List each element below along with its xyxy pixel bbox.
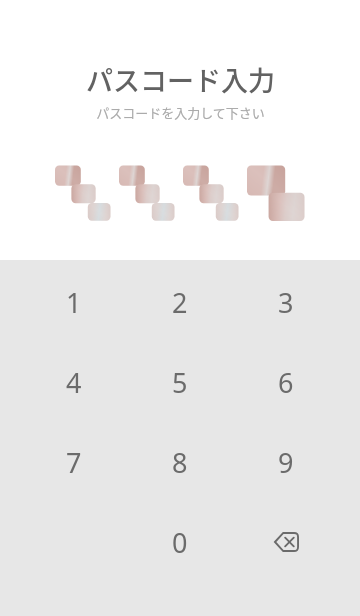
button[interactable]: 8: [127, 422, 233, 502]
button[interactable]: 7: [21, 422, 127, 502]
button[interactable]: 6: [233, 342, 339, 422]
button[interactable]: 2: [127, 262, 233, 342]
staticText: 5: [172, 364, 188, 401]
button[interactable]: Delete: [233, 502, 339, 582]
staticText: 2: [172, 284, 188, 321]
staticText: 1: [66, 284, 82, 321]
button[interactable]: 4: [21, 342, 127, 422]
staticText: パスコードを入力して下さい: [96, 103, 265, 122]
staticText: 7: [66, 444, 82, 481]
button[interactable]: 3: [233, 262, 339, 342]
button[interactable]: 0: [127, 502, 233, 582]
staticText: 6: [278, 364, 294, 401]
button[interactable]: 1: [21, 262, 127, 342]
button[interactable]: 5: [127, 342, 233, 422]
staticText: 4: [66, 364, 82, 401]
button[interactable]: 9: [233, 422, 339, 502]
staticText: 0: [172, 524, 188, 561]
staticText: 9: [278, 444, 294, 481]
staticText: パスコード入力: [86, 60, 275, 99]
staticText: 3: [278, 284, 294, 321]
staticText: 8: [172, 444, 188, 481]
